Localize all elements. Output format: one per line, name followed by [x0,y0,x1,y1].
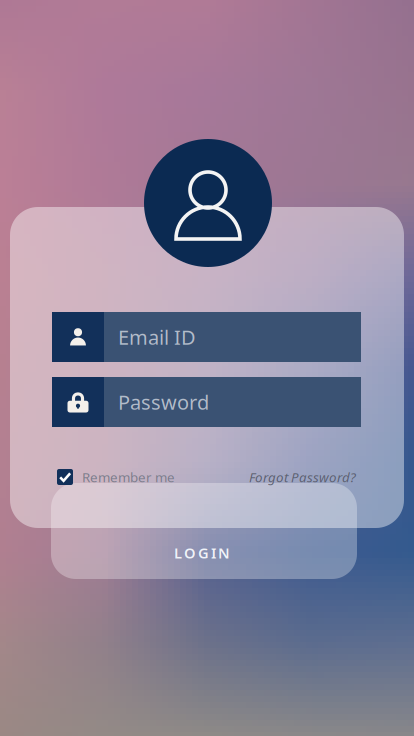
staticText: Email ID [118,324,196,350]
button[interactable]: LOGIN [51,483,357,579]
button[interactable]: Password [52,377,361,427]
staticText: Password [118,389,209,415]
staticText: Forgot Password? [249,468,356,486]
button[interactable]: Forgot Password? [249,466,356,488]
staticText: LOGIN [174,543,236,562]
button[interactable]: Email ID [52,312,361,362]
button[interactable]: Remember me [57,466,175,488]
staticText: Remember me [82,468,175,486]
